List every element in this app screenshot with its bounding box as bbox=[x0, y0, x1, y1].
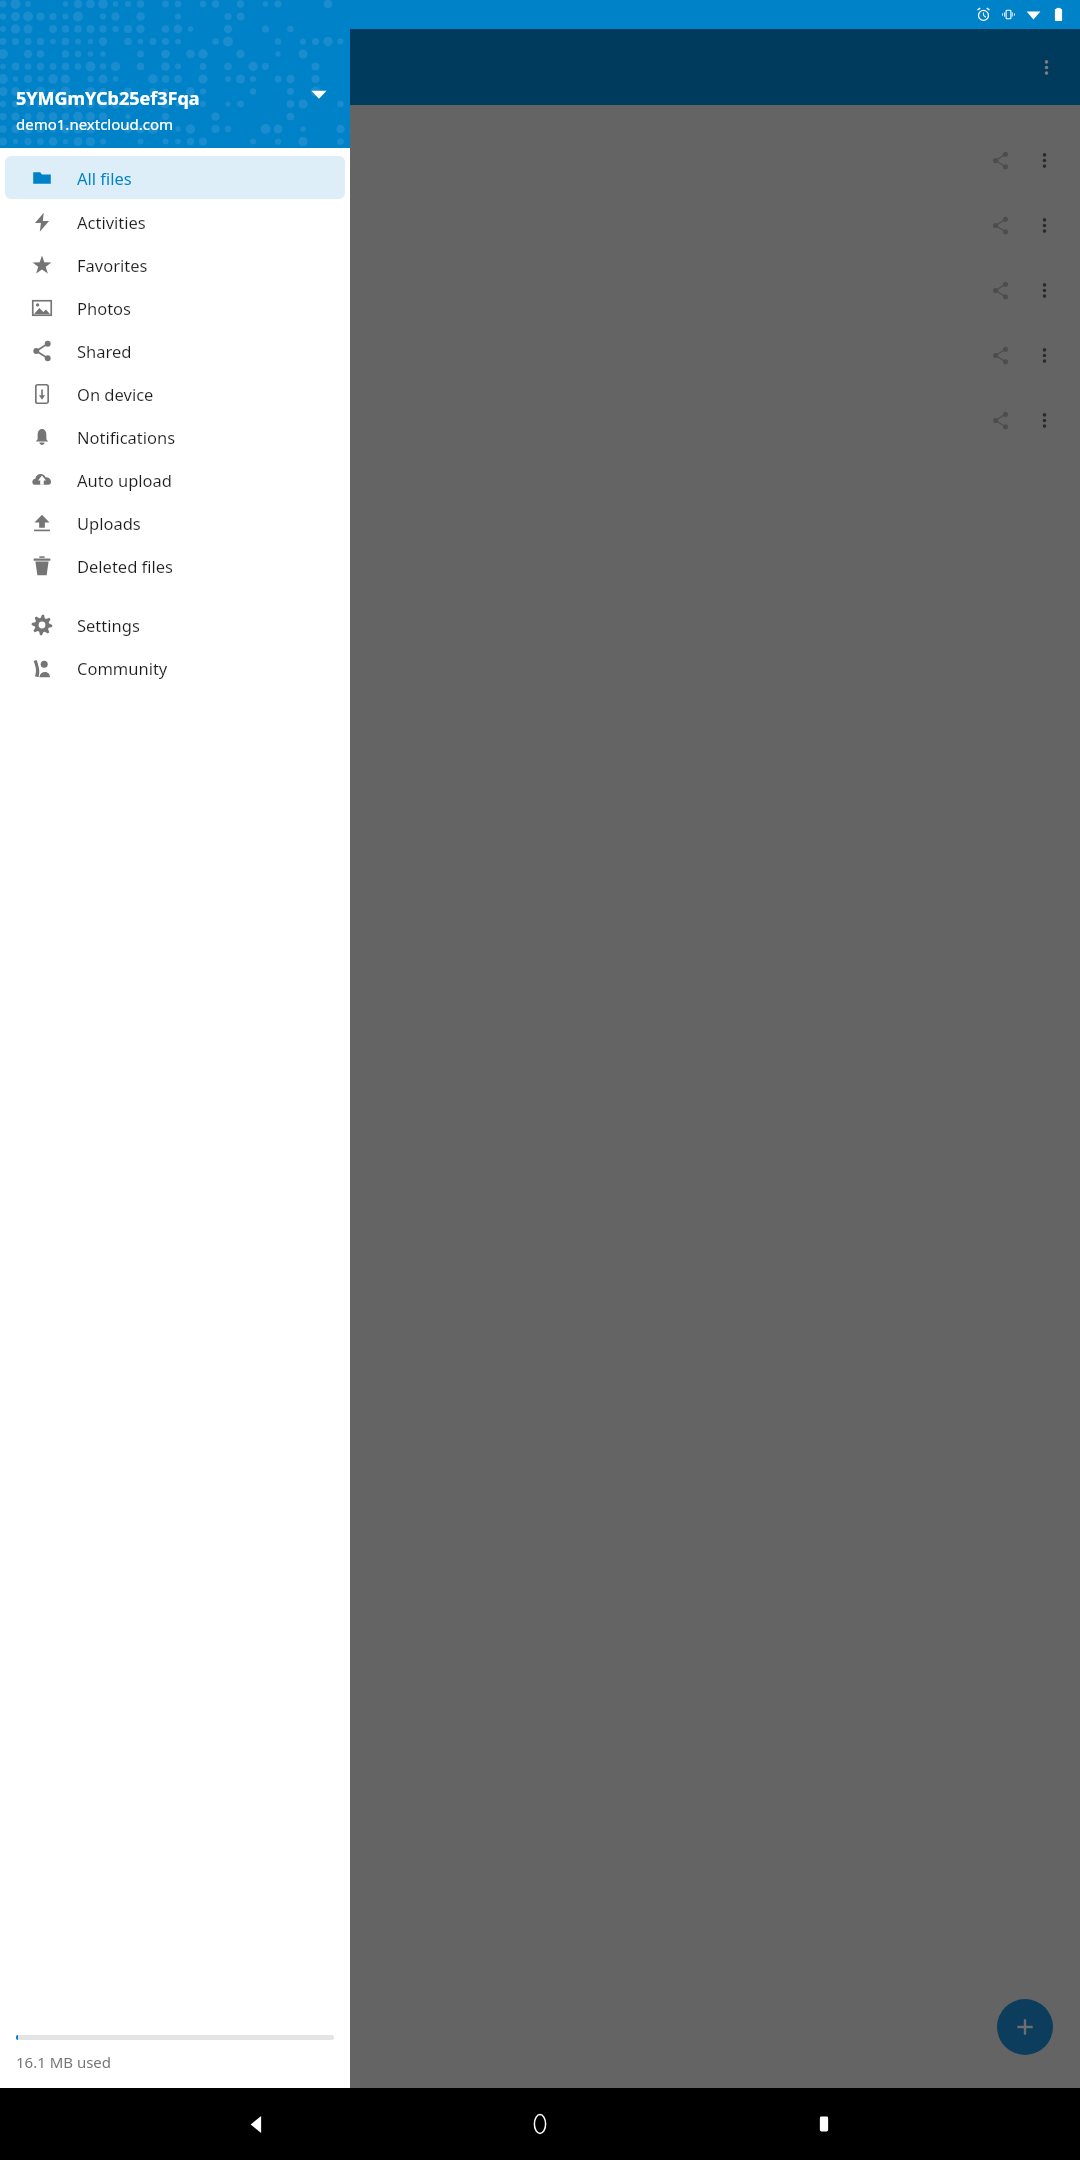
button[interactable]: Uploads bbox=[5, 501, 345, 544]
button[interactable]: All files bbox=[5, 156, 345, 199]
button[interactable]: Back bbox=[228, 2096, 284, 2152]
staticText: Community bbox=[77, 657, 168, 679]
button[interactable]: More options bbox=[1026, 47, 1066, 87]
button[interactable]: More options bbox=[1022, 138, 1066, 182]
staticText: Activities bbox=[77, 211, 146, 233]
button[interactable]: Activities bbox=[5, 200, 345, 243]
button[interactable]: Deleted files bbox=[5, 544, 345, 587]
button[interactable]: Switch account bbox=[301, 76, 337, 112]
staticText: Uploads bbox=[77, 512, 141, 534]
button[interactable]: More options bbox=[1022, 333, 1066, 377]
staticText: Auto upload bbox=[77, 469, 172, 491]
staticText: On device bbox=[77, 383, 154, 405]
button[interactable]: Share bbox=[978, 138, 1022, 182]
staticText: Deleted files bbox=[77, 555, 174, 577]
button[interactable]: More options bbox=[1022, 398, 1066, 442]
button[interactable]: Share bbox=[978, 333, 1022, 377]
button[interactable]: More options bbox=[1022, 268, 1066, 312]
button[interactable]: 5YMGmYCb25ef3Fqa bbox=[0, 0, 350, 148]
button[interactable]: On device bbox=[5, 372, 345, 415]
button[interactable]: Settings bbox=[5, 603, 345, 646]
button[interactable]: More options bbox=[1022, 203, 1066, 247]
staticText: Favorites bbox=[77, 254, 148, 276]
staticText: Settings bbox=[77, 614, 140, 636]
button[interactable]: Favorites bbox=[5, 243, 345, 286]
button[interactable]: Share bbox=[978, 398, 1022, 442]
button[interactable]: Shared bbox=[5, 329, 345, 372]
button[interactable]: Photos bbox=[5, 286, 345, 329]
staticText: 9:04 bbox=[16, 5, 46, 25]
staticText: demo1.nextcloud.com bbox=[16, 114, 174, 134]
button[interactable]: Community bbox=[5, 646, 345, 689]
button[interactable]: Recents bbox=[796, 2096, 852, 2152]
button[interactable]: Notifications bbox=[5, 415, 345, 458]
staticText: Notifications bbox=[77, 426, 176, 448]
staticText: Photos bbox=[77, 297, 132, 319]
staticText: 5YMGmYCb25ef3Fqa bbox=[16, 86, 200, 111]
button[interactable]: Auto upload bbox=[5, 458, 345, 501]
staticText: All files bbox=[77, 167, 132, 189]
button[interactable]: Home bbox=[512, 2096, 568, 2152]
button[interactable]: Share bbox=[978, 203, 1022, 247]
staticText: Shared bbox=[77, 340, 132, 362]
staticText: 16.1 MB used bbox=[16, 2052, 112, 2072]
button[interactable]: Share bbox=[978, 268, 1022, 312]
button[interactable]: Add bbox=[997, 1999, 1053, 2055]
